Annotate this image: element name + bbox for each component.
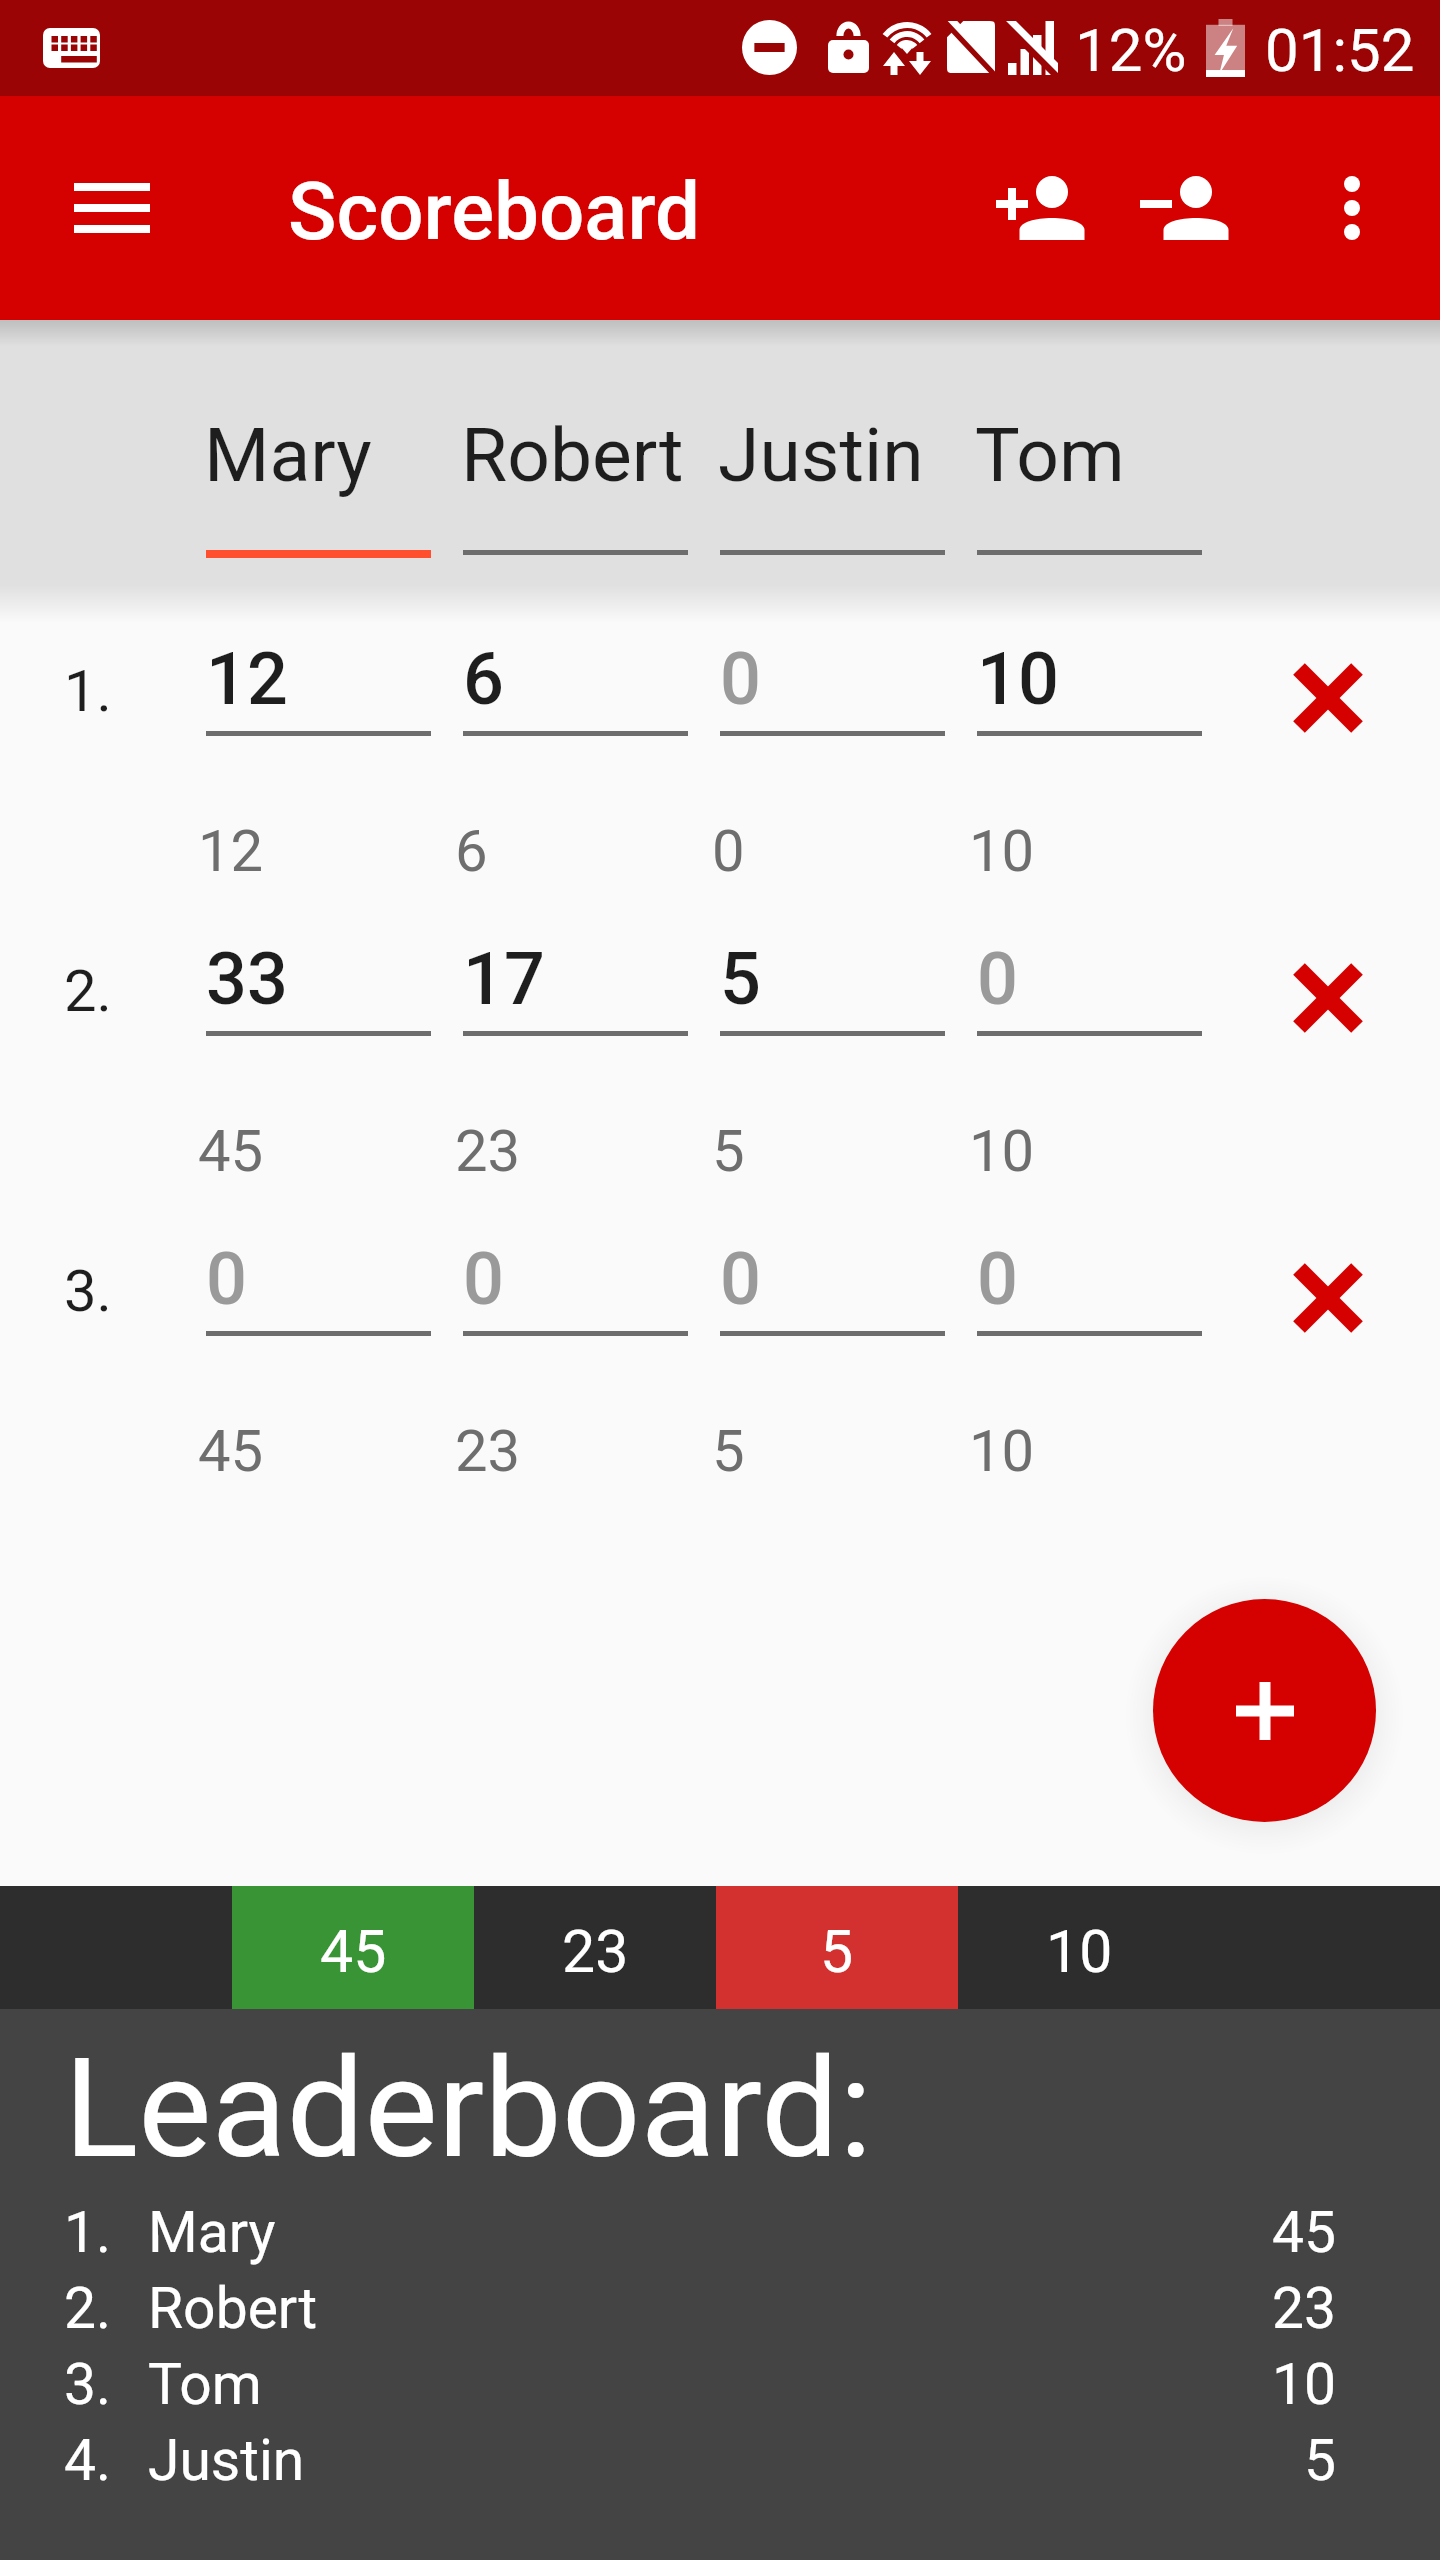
staticText: 1. — [64, 2199, 112, 2266]
button[interactable]: 10 — [973, 600, 1206, 750]
staticText: Scoreboard — [288, 165, 701, 259]
staticText: 12% — [1075, 15, 1187, 85]
staticText: 0 — [712, 817, 745, 885]
staticText: 12 — [198, 817, 264, 885]
staticText: 10 — [969, 817, 1035, 885]
staticText: 0 — [977, 1237, 1018, 1321]
staticText: 10 — [1156, 2351, 1336, 2418]
button[interactable]: 23 — [474, 1886, 716, 2009]
button[interactable]: 10 — [958, 1886, 1200, 2009]
button[interactable]: 5 — [716, 1886, 958, 2009]
staticText: 17 — [463, 937, 545, 1021]
staticText: 3. — [64, 1257, 112, 1325]
button[interactable]: 2. — [0, 2267, 1440, 2343]
staticText: 6 — [455, 817, 488, 885]
staticText: Justin — [148, 2427, 305, 2494]
staticText: 0 — [720, 1237, 761, 1321]
button[interactable]: 5 — [716, 900, 949, 1050]
button[interactable]: 0 — [716, 1200, 949, 1350]
staticText: Leaderboard: — [64, 2028, 873, 2190]
staticText: Tom — [148, 2351, 262, 2418]
button[interactable]: Open navigation drawer — [30, 126, 194, 290]
staticText: 4. — [64, 2427, 112, 2494]
button[interactable]: Robert — [461, 360, 692, 578]
staticText: 45 — [320, 1917, 387, 1986]
staticText: 1. — [64, 657, 112, 725]
button[interactable]: Remove player — [1102, 126, 1266, 290]
staticText: 23 — [562, 1917, 629, 1986]
button[interactable]: 4. — [0, 2419, 1440, 2495]
staticText: 2. — [64, 957, 112, 1025]
button[interactable]: 17 — [459, 900, 692, 1050]
button[interactable]: Delete round 3 — [1278, 1248, 1378, 1348]
staticText: Robert — [148, 2275, 318, 2342]
staticText: 0 — [463, 1237, 504, 1321]
button[interactable]: Mary — [204, 360, 435, 578]
staticText: 2. — [64, 2275, 112, 2342]
staticText: Mary — [148, 2199, 276, 2266]
button[interactable]: 12 — [202, 600, 435, 750]
button[interactable]: 0 — [973, 900, 1206, 1050]
button[interactable]: 1. — [0, 2191, 1440, 2267]
button[interactable]: Add player — [958, 126, 1122, 290]
button[interactable]: 0 — [202, 1200, 435, 1350]
staticText: Justin — [718, 411, 924, 499]
button[interactable]: 0 — [973, 1200, 1206, 1350]
staticText: 23 — [455, 1417, 521, 1485]
button[interactable]: Delete round 1 — [1278, 648, 1378, 748]
button[interactable]: 33 — [202, 900, 435, 1050]
staticText: 45 — [1156, 2199, 1336, 2266]
button[interactable]: 6 — [459, 600, 692, 750]
staticText: 45 — [198, 1117, 264, 1185]
staticText: 10 — [969, 1417, 1035, 1485]
button[interactable]: 45 — [232, 1886, 474, 2009]
staticText: 12 — [206, 637, 288, 721]
staticText: 6 — [463, 637, 504, 721]
button[interactable]: Delete round 2 — [1278, 948, 1378, 1048]
staticText: Mary — [204, 411, 372, 499]
staticText: 23 — [1156, 2275, 1336, 2342]
staticText: 5 — [720, 937, 761, 1021]
staticText: 45 — [198, 1417, 264, 1485]
staticText: 0 — [977, 937, 1018, 1021]
staticText: 10 — [969, 1117, 1035, 1185]
staticText: 3. — [64, 2351, 112, 2418]
button[interactable]: 3. — [0, 2343, 1440, 2419]
staticText: 5 — [712, 1417, 745, 1485]
button[interactable]: 0 — [716, 600, 949, 750]
staticText: 10 — [977, 637, 1059, 721]
staticText: 5 — [712, 1117, 745, 1185]
staticText: 23 — [455, 1117, 521, 1185]
button[interactable]: More options — [1270, 126, 1434, 290]
staticText: Robert — [461, 411, 684, 499]
staticText: 0 — [206, 1237, 247, 1321]
button[interactable]: Add round — [1153, 1599, 1376, 1822]
button[interactable]: Tom — [975, 360, 1206, 578]
staticText: 33 — [206, 937, 288, 1021]
button[interactable]: 0 — [459, 1200, 692, 1350]
button[interactable]: Justin — [718, 360, 949, 578]
staticText: 10 — [1046, 1917, 1113, 1986]
staticText: Tom — [975, 411, 1125, 499]
staticText: 5 — [1156, 2427, 1336, 2494]
staticText: 0 — [720, 637, 761, 721]
staticText: 01:52 — [1265, 15, 1415, 85]
staticText: 5 — [820, 1917, 854, 1986]
